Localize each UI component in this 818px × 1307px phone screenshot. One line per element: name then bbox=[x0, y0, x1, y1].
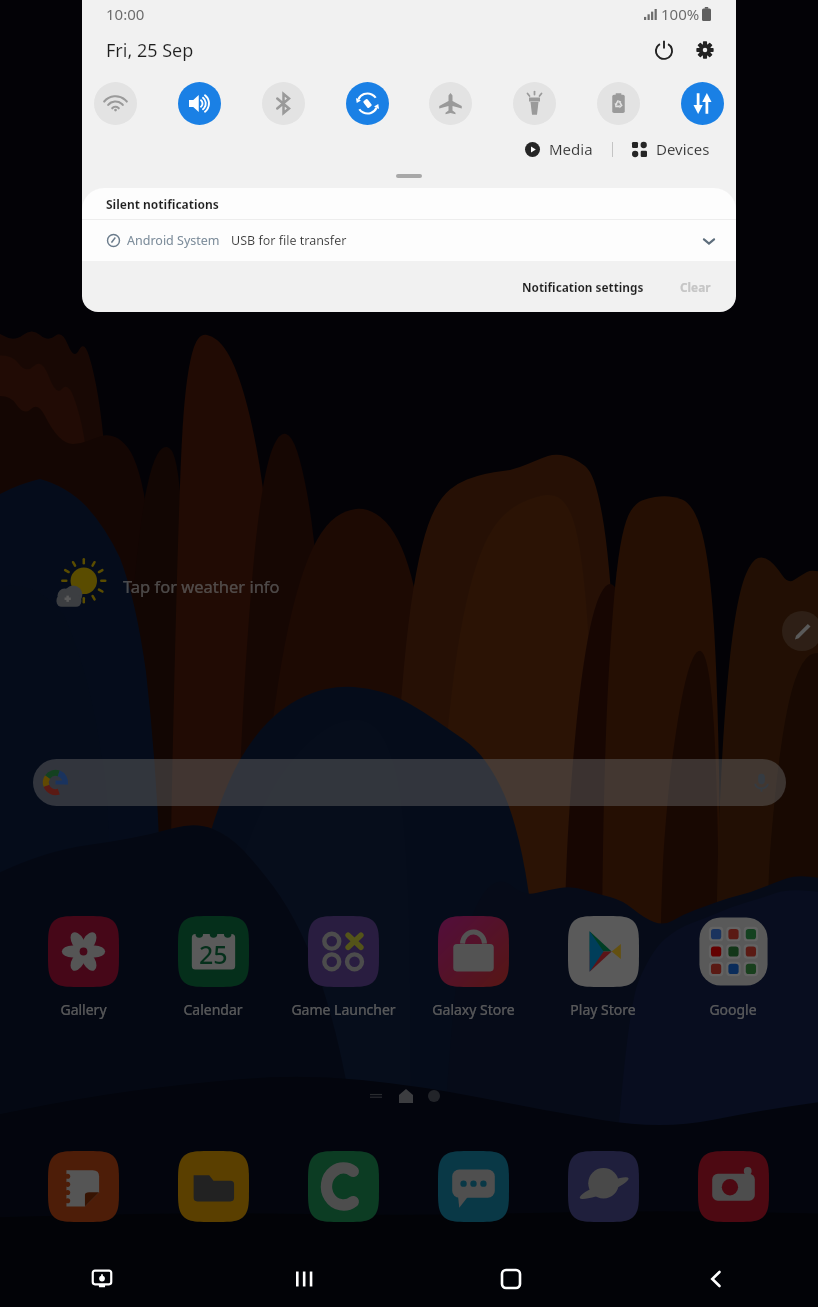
button[interactable]: Edit bbox=[782, 611, 818, 651]
button[interactable]: Clear bbox=[676, 273, 715, 301]
staticText: Android System bbox=[127, 232, 220, 249]
staticText: USB for file transfer bbox=[231, 232, 347, 249]
staticText: Play Store bbox=[570, 1000, 636, 1019]
staticText: Clear bbox=[680, 279, 711, 295]
button[interactable]: Recents bbox=[204, 1251, 408, 1307]
button[interactable]: Google bbox=[671, 916, 795, 1019]
button[interactable]: Devices bbox=[627, 135, 715, 163]
staticText: Devices bbox=[656, 139, 710, 159]
staticText: Silent notifications bbox=[106, 196, 219, 212]
button[interactable]: Play Store bbox=[541, 916, 665, 1019]
button[interactable]: Samsung Notes bbox=[48, 1151, 119, 1222]
button[interactable] bbox=[33, 759, 786, 806]
button[interactable]: Phone bbox=[308, 1151, 379, 1222]
button[interactable]: Internet bbox=[568, 1151, 639, 1222]
button[interactable]: Tap for weather info bbox=[50, 560, 280, 612]
button[interactable]: Wi-Fi bbox=[94, 82, 137, 125]
staticText: 100% bbox=[661, 4, 700, 24]
button[interactable]: 25 bbox=[151, 916, 275, 1019]
staticText: Fri, 25 Sep bbox=[106, 38, 194, 63]
button[interactable]: Gallery bbox=[21, 916, 145, 1019]
button[interactable]: My Files bbox=[178, 1151, 249, 1222]
button[interactable]: Messages bbox=[438, 1151, 509, 1222]
staticText: Gallery bbox=[60, 1000, 107, 1019]
staticText: Galaxy Store bbox=[432, 1000, 515, 1019]
button[interactable]: Notification settings bbox=[518, 273, 648, 301]
staticText: Calendar bbox=[183, 1000, 243, 1019]
button[interactable]: Bluetooth bbox=[262, 82, 305, 125]
button[interactable]: Power saving bbox=[597, 82, 640, 125]
staticText: Notification settings bbox=[522, 279, 644, 295]
button[interactable]: Settings bbox=[687, 32, 723, 68]
button[interactable]: Android System bbox=[82, 220, 736, 261]
staticText: Google bbox=[709, 1000, 757, 1019]
button[interactable]: Airplane mode bbox=[429, 82, 472, 125]
staticText: 25 bbox=[199, 937, 228, 971]
button[interactable]: Sound bbox=[178, 82, 221, 125]
staticText: Tap for weather info bbox=[123, 575, 280, 597]
button[interactable]: Screenshot bbox=[0, 1251, 204, 1307]
button[interactable]: Back bbox=[613, 1251, 818, 1307]
staticText: 10:00 bbox=[106, 4, 145, 24]
button[interactable]: Galaxy Store bbox=[411, 916, 535, 1019]
button[interactable]: Flashlight bbox=[513, 82, 556, 125]
button[interactable]: Power bbox=[646, 32, 682, 68]
button[interactable]: Mobile data bbox=[681, 82, 724, 125]
staticText: Media bbox=[549, 139, 593, 159]
button[interactable]: Game Launcher bbox=[281, 916, 405, 1019]
button[interactable]: Media bbox=[520, 135, 598, 163]
button[interactable]: Home bbox=[408, 1251, 613, 1307]
button[interactable]: Auto rotate bbox=[346, 82, 389, 125]
staticText: Game Launcher bbox=[291, 1000, 396, 1019]
button[interactable]: Camera bbox=[698, 1151, 769, 1222]
